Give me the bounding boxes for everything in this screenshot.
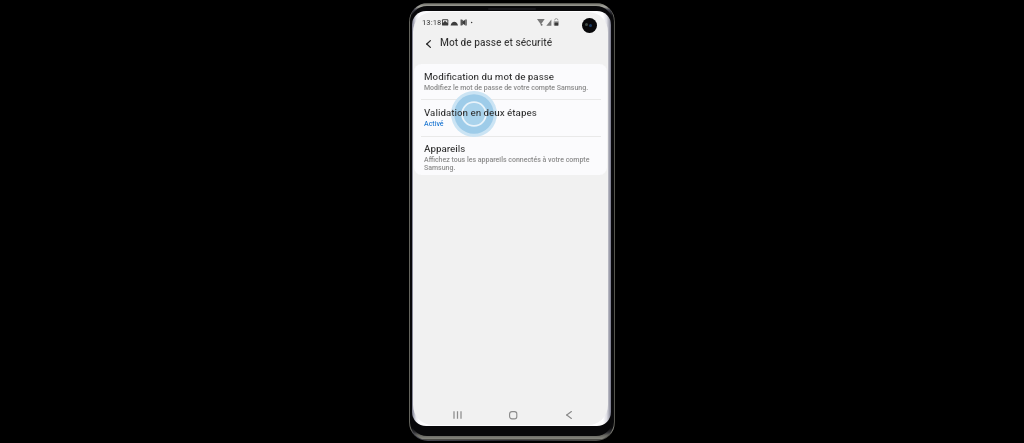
staticText: Modifiez le mot de passe de votre compte… xyxy=(424,84,592,92)
button[interactable]: Validation en deux étapes xyxy=(414,99,607,136)
button[interactable]: Modification du mot de passe xyxy=(414,64,607,99)
staticText: 13:18 xyxy=(422,18,442,27)
button[interactable]: Home xyxy=(500,404,526,425)
staticText: Affichez tous les appareils connectés à … xyxy=(424,156,592,172)
staticText: Modification du mot de passe xyxy=(424,71,554,82)
button[interactable]: Back xyxy=(420,35,437,52)
button[interactable]: Appareils xyxy=(414,136,607,175)
staticText: Mot de passe et sécurité xyxy=(440,37,553,49)
staticText: Appareils xyxy=(424,143,466,154)
staticText: Validation en deux étapes xyxy=(424,107,537,118)
staticText: Activé xyxy=(424,120,592,128)
button[interactable]: Recent apps xyxy=(444,404,470,425)
button[interactable]: Back xyxy=(556,404,582,425)
